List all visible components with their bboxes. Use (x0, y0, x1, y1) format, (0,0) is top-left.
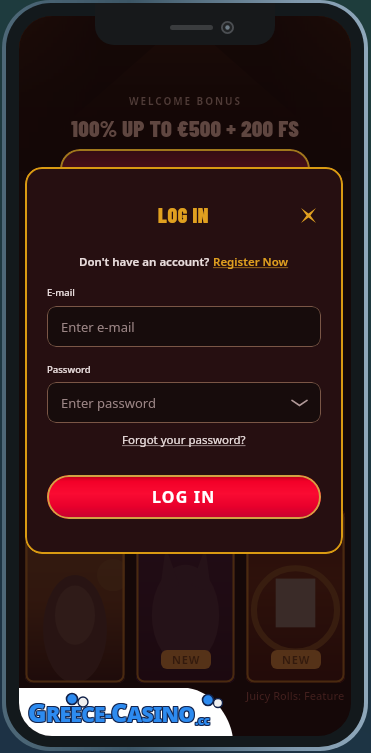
staticText: .cc (196, 713, 211, 729)
staticText: C (112, 696, 128, 730)
staticText: .cc (194, 711, 209, 727)
staticText: C (111, 694, 127, 728)
staticText: .cc (194, 713, 209, 729)
staticText: - (105, 700, 111, 729)
staticText: ASINO (128, 700, 196, 729)
staticText: LOG IN (158, 203, 210, 227)
staticText: NEW (282, 652, 311, 667)
staticText: NEW (172, 652, 201, 667)
staticText: REECE (45, 701, 104, 730)
staticText: REECE (45, 699, 104, 728)
staticText: .cc (195, 712, 210, 728)
staticText: 100% UP TO €500 + 200 FS (71, 114, 300, 142)
staticText: ASINO (127, 701, 195, 730)
staticText: .cc (195, 711, 210, 727)
staticText: REECE (46, 700, 105, 729)
button[interactable]: Forgot your password? (122, 432, 246, 448)
staticText: G (28, 695, 46, 729)
staticText: G (27, 694, 45, 728)
staticText: - (105, 701, 111, 730)
staticText: G (29, 695, 47, 729)
button[interactable]: Enter password (47, 382, 321, 423)
button[interactable]: Close (295, 202, 321, 228)
staticText: Enter password (61, 394, 156, 412)
staticText: C (112, 694, 128, 728)
staticText: Enter e-mail (61, 318, 135, 336)
staticText: Land of Egypt (25, 688, 98, 703)
staticText: REECE (45, 700, 104, 729)
staticText: ASINO (126, 699, 194, 728)
staticText: REECE (47, 701, 106, 730)
staticText: ASINO (127, 700, 195, 729)
staticText: G (27, 696, 45, 730)
staticText: C (111, 696, 127, 730)
staticText: Don't have an account? (79, 254, 213, 270)
staticText: .cc (194, 712, 209, 728)
staticText: - (104, 700, 110, 729)
staticText: - (106, 699, 112, 728)
staticText: ASINO (128, 699, 196, 728)
staticText: G (29, 694, 47, 728)
staticText: REECE (47, 699, 106, 728)
staticText: Password (47, 363, 91, 376)
staticText: REECE (46, 701, 105, 730)
staticText: ASINO (126, 700, 194, 729)
staticText: - (104, 699, 110, 728)
staticText: C (112, 695, 128, 729)
staticText: G (29, 696, 47, 730)
staticText: E-mail (47, 286, 75, 299)
staticText: REECE (46, 699, 105, 728)
staticText: .cc (196, 711, 211, 727)
button[interactable]: LOG IN (47, 475, 321, 519)
staticText: C (110, 695, 126, 729)
staticText: .cc (195, 713, 210, 729)
staticText: WELCOME BONUS (129, 94, 242, 108)
staticText: G (27, 695, 45, 729)
staticText: - (105, 699, 111, 728)
staticText: LOG IN (152, 486, 216, 508)
staticText: ASINO (126, 701, 194, 730)
staticText: G (28, 694, 46, 728)
other: Show password (292, 395, 307, 410)
staticText: - (104, 701, 110, 730)
button[interactable]: Enter e-mail (47, 306, 321, 347)
staticText: C (110, 694, 126, 728)
staticText: - (106, 701, 112, 730)
staticText: C (110, 696, 126, 730)
staticText: C (111, 695, 127, 729)
staticText: G (28, 696, 46, 730)
staticText: Juicy Rolls: Feature (246, 688, 345, 703)
staticText: ASINO (127, 699, 195, 728)
staticText: REECE (47, 700, 106, 729)
staticText: ASINO (128, 701, 196, 730)
button[interactable]: Register Now (213, 254, 289, 270)
staticText: - (106, 700, 112, 729)
staticText: .cc (196, 712, 211, 728)
